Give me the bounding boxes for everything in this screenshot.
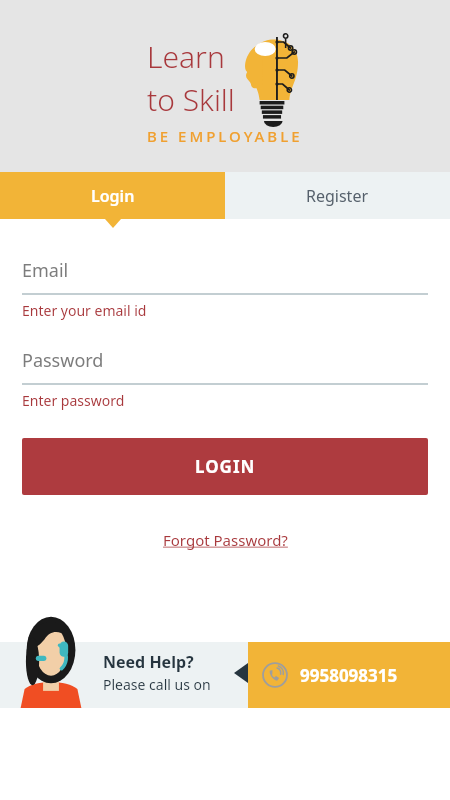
staticText: LOGIN xyxy=(195,455,256,478)
staticText: Need Help? xyxy=(103,651,194,673)
other: Call 9958098315 xyxy=(262,662,288,688)
staticText: Enter password xyxy=(22,391,125,410)
staticText: Please call us on xyxy=(103,675,211,694)
staticText: Email xyxy=(22,258,69,283)
staticText: BE EMPLOYABLE xyxy=(147,126,303,146)
staticText: 9958098315 xyxy=(300,664,398,687)
staticText: to Skill xyxy=(147,79,235,120)
staticText: Login xyxy=(91,185,135,207)
staticText: Register xyxy=(306,185,369,207)
staticText: Enter your email id xyxy=(22,301,147,320)
staticText: Learn xyxy=(147,36,225,77)
staticText: Forgot Password? xyxy=(163,530,288,550)
button[interactable]: Call 9958098315 xyxy=(248,642,450,708)
button[interactable]: Login xyxy=(0,172,225,219)
button[interactable]: Register xyxy=(225,172,450,219)
staticText: Password xyxy=(22,348,104,373)
button[interactable]: LOGIN xyxy=(22,438,428,495)
button[interactable]: Forgot Password? xyxy=(157,524,294,556)
